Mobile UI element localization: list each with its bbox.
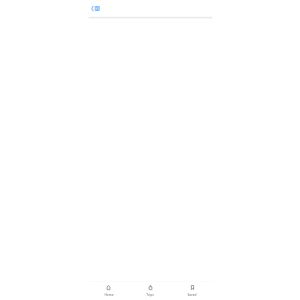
button[interactable]: Back xyxy=(90,3,96,14)
button[interactable]: Saved xyxy=(171,282,213,300)
staticText: Home xyxy=(104,293,114,297)
button[interactable]: App logo xyxy=(94,4,101,13)
staticText: Saved xyxy=(187,293,197,297)
button[interactable]: Home xyxy=(88,282,129,300)
staticText: Trips xyxy=(146,293,154,297)
button[interactable]: Trips xyxy=(129,282,171,300)
